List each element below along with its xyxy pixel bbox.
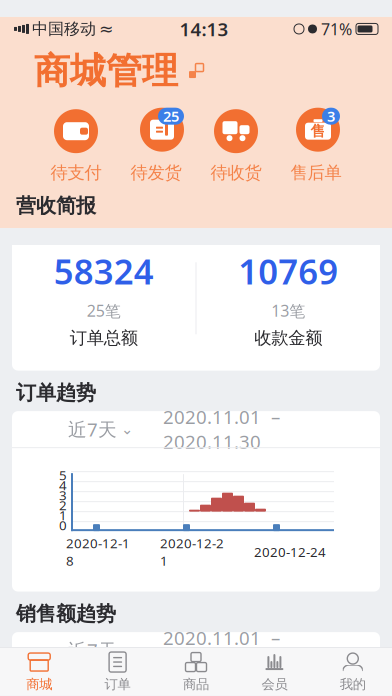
staticText: ⌄ <box>121 421 133 437</box>
button[interactable]: 订单 <box>78 648 157 696</box>
staticText: 我的 <box>340 676 366 692</box>
staticText: 待收货 <box>210 162 261 183</box>
staticText: 25 <box>163 106 179 126</box>
staticText: 近7天 <box>68 638 117 662</box>
staticText: 4 <box>59 476 67 494</box>
staticText: 商城管理 <box>34 49 178 93</box>
button[interactable]: 本月 <box>12 197 380 233</box>
button[interactable]: 售 <box>276 107 356 183</box>
staticText: 2020.11.01 – 2020.11.30 <box>152 190 274 240</box>
staticText: ⌄ <box>121 642 133 658</box>
button[interactable]: 会员 <box>235 648 314 696</box>
button[interactable]: 商城 <box>0 648 78 696</box>
staticText: 近7天 <box>68 417 117 441</box>
staticText: 商品 <box>183 676 209 692</box>
staticText: 25笔 <box>87 300 121 321</box>
staticText: 2020-12-18 <box>66 534 130 569</box>
button[interactable]: 近7天 <box>12 411 380 447</box>
staticText: 营收简报 <box>16 193 96 218</box>
staticText: 13笔 <box>271 300 305 321</box>
button[interactable]: 近7天 <box>12 669 380 696</box>
staticText: 售后单 <box>290 162 341 183</box>
staticText: 2020-12-21 <box>160 534 224 569</box>
staticText: 中国移动 <box>32 19 96 39</box>
staticText: 会员 <box>261 676 287 692</box>
staticText: 2020.11.01 – 2020.11.30 <box>163 404 285 454</box>
button[interactable]: 25 <box>116 107 196 183</box>
button[interactable]: 待收货 <box>196 107 276 183</box>
staticText: 2 <box>59 496 67 514</box>
staticText: 58324 <box>54 248 154 294</box>
staticText: 10769 <box>238 248 338 294</box>
staticText: 近7天 <box>68 675 117 696</box>
staticText: 订单总额 <box>70 327 138 349</box>
staticText: ≈ <box>99 19 114 39</box>
staticText: 待支付 <box>50 162 101 183</box>
staticText: 待发货 <box>130 162 181 183</box>
button[interactable]: 商品 <box>157 648 235 696</box>
staticText: 订单趋势 <box>16 381 96 405</box>
staticText: 订单 <box>105 676 131 692</box>
staticText: 销售额趋势 <box>16 602 116 626</box>
staticText: 售 <box>310 122 325 140</box>
staticText: 3 <box>59 486 67 504</box>
staticText: 71% <box>321 18 352 39</box>
staticText: 14:13 <box>179 17 228 41</box>
staticText: 3 <box>327 106 335 126</box>
staticText: 商城 <box>26 676 52 692</box>
button[interactable]: 近7天 <box>12 632 380 668</box>
staticText: 0 <box>59 516 67 534</box>
button[interactable]: 待支付 <box>36 107 116 183</box>
staticText: ⌄ <box>121 679 133 695</box>
staticText: 2020.11.01 – 2020.11.30 <box>163 662 285 696</box>
staticText: 2020.11.01 – 2020.11.30 <box>163 625 285 675</box>
staticText: 2020-12-24 <box>254 543 326 561</box>
staticText: 本月 <box>68 203 106 226</box>
button[interactable]: 我的 <box>314 648 392 696</box>
staticText: 1 <box>59 506 67 524</box>
staticText: 收款金额 <box>254 327 322 349</box>
staticText: 5 <box>59 466 67 484</box>
